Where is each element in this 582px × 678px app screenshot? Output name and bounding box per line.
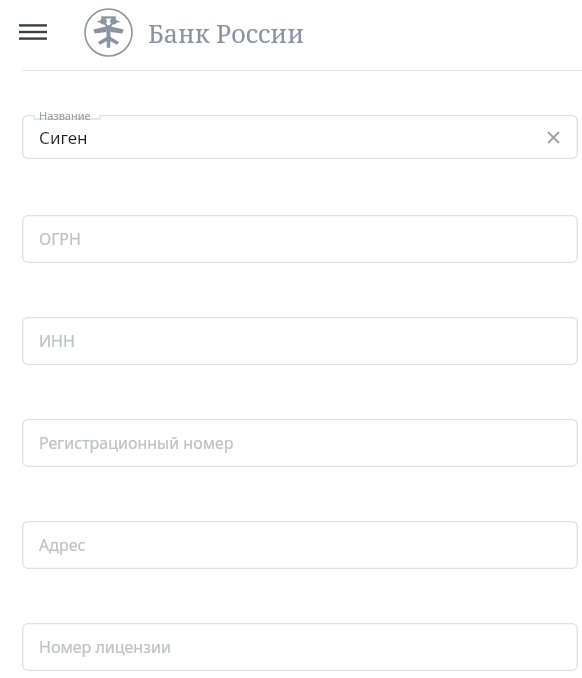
button[interactable]: Банк России bbox=[84, 8, 305, 57]
staticText: Сиген bbox=[39, 126, 88, 149]
button[interactable]: Регистрационный номер bbox=[22, 419, 578, 467]
button[interactable]: ИНН bbox=[22, 317, 578, 365]
button[interactable] bbox=[22, 115, 578, 159]
button[interactable]: Clear bbox=[540, 124, 566, 150]
staticText: Регистрационный номер bbox=[39, 432, 234, 454]
staticText: Название bbox=[39, 108, 91, 123]
staticText: Номер лицензии bbox=[39, 636, 171, 658]
staticText: Банк России bbox=[148, 16, 305, 50]
button[interactable]: Номер лицензии bbox=[22, 623, 578, 671]
staticText: ОГРН bbox=[39, 228, 81, 250]
staticText: Адрес bbox=[39, 534, 86, 556]
staticText: ИНН bbox=[39, 330, 75, 352]
button[interactable]: ОГРН bbox=[22, 215, 578, 263]
button[interactable]: Адрес bbox=[22, 521, 578, 569]
button[interactable]: Menu bbox=[14, 12, 52, 52]
